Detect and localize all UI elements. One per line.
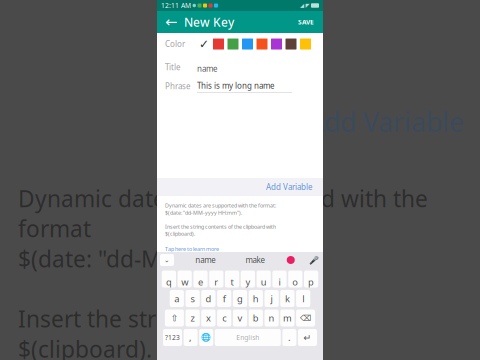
button[interactable]: 5 (225, 270, 239, 287)
button[interactable]: k (280, 290, 294, 307)
staticText: b (253, 312, 259, 324)
staticText: Insert the string co (18, 304, 221, 334)
staticText: r (214, 276, 218, 288)
button[interactable]: 4 (209, 270, 223, 287)
button[interactable]: Color swatch (213, 38, 224, 49)
staticText: Dynamic dates are supported with the for… (18, 183, 428, 244)
button[interactable]: ?123 (163, 329, 182, 346)
button[interactable]: Shift (165, 309, 184, 326)
button[interactable]: Color swatch (256, 38, 267, 49)
button[interactable]: h (249, 290, 263, 307)
button[interactable]: f (217, 290, 231, 307)
staticText: Dynamic dates are supported with the for… (165, 202, 276, 209)
staticText: w (181, 276, 188, 288)
staticText: 🎤 (309, 255, 319, 264)
button[interactable]: Add Variable (262, 179, 317, 195)
button[interactable]: 1 (162, 270, 176, 287)
staticText: o (292, 276, 298, 288)
button[interactable]: 7 (257, 270, 271, 287)
button[interactable]: 6 (241, 270, 255, 287)
staticText: ⇧ (170, 313, 178, 323)
button[interactable]: Period (282, 329, 296, 346)
staticText: d (205, 293, 211, 305)
button[interactable]: 2 (178, 270, 192, 287)
staticText: ✓ (199, 37, 209, 51)
staticText: s (191, 293, 195, 305)
staticText: m (283, 312, 292, 324)
button[interactable]: l (296, 290, 310, 307)
button[interactable]: Title (157, 55, 323, 74)
button[interactable]: Tap here to learn more (165, 245, 219, 252)
staticText: h (253, 293, 259, 305)
staticText: Title (165, 62, 181, 72)
button[interactable]: Enter (298, 329, 317, 346)
button[interactable]: z (185, 309, 200, 326)
button[interactable]: Expand suggestions (160, 254, 174, 266)
button[interactable]: c (217, 309, 231, 326)
button[interactable]: SAVE (293, 11, 319, 33)
button[interactable]: 8 (272, 270, 287, 287)
staticText: ?123 (165, 333, 180, 342)
button[interactable]: Voice input (308, 254, 320, 266)
staticText: f (223, 293, 226, 305)
button[interactable]: Backspace (296, 309, 315, 326)
button[interactable]: 0 (304, 270, 318, 287)
button[interactable]: No color (197, 37, 211, 51)
staticText: ◢ (300, 2, 304, 9)
button[interactable]: name (187, 255, 224, 265)
button[interactable]: Space (215, 329, 281, 346)
staticText: $(clipboard). (165, 230, 195, 237)
button[interactable]: x (201, 309, 215, 326)
staticText: v (237, 312, 242, 324)
button[interactable]: b (249, 309, 263, 326)
button[interactable]: Color swatch (227, 38, 238, 49)
staticText: c (222, 312, 226, 324)
button[interactable]: Emoji (287, 256, 295, 264)
button[interactable]: g (233, 290, 247, 307)
staticText: New Key (184, 14, 234, 30)
staticText: name (195, 255, 216, 265)
staticText: Add Variable (266, 182, 313, 192)
staticText: $(date: "dd-MM-yy (18, 244, 214, 274)
staticText: . (288, 331, 291, 344)
staticText: n (269, 312, 275, 324)
staticText: English (236, 333, 259, 342)
button[interactable]: Color swatch (300, 38, 311, 49)
button[interactable]: 9 (288, 270, 302, 287)
staticText: ⌄ (164, 256, 170, 264)
staticText: y (245, 276, 250, 288)
button[interactable]: Change language (199, 329, 213, 346)
staticText: 🌐 (201, 333, 211, 342)
button[interactable]: n (264, 309, 279, 326)
staticText: ◤ (305, 2, 309, 9)
staticText: Insert the string contents of the clipbo… (165, 223, 276, 230)
staticText: Color (165, 39, 185, 49)
button[interactable]: Color swatch (271, 38, 282, 49)
staticText: j (271, 293, 273, 305)
button[interactable]: m (280, 309, 294, 326)
staticText: t (231, 276, 234, 288)
button[interactable]: a (170, 290, 184, 307)
button[interactable]: make (237, 255, 273, 265)
button[interactable]: j (264, 290, 279, 307)
staticText: k (285, 293, 290, 305)
button[interactable]: Color swatch (242, 38, 253, 49)
staticText: SAVE (298, 18, 314, 26)
staticText: ⌫ (300, 313, 311, 323)
staticText: ↵ (303, 332, 311, 343)
staticText: i (278, 276, 280, 288)
button[interactable]: 3 (193, 270, 208, 287)
button[interactable]: Color swatch (285, 38, 296, 49)
button[interactable]: s (185, 290, 200, 307)
button[interactable]: Back (161, 11, 181, 33)
staticText: Add Variable (307, 104, 464, 139)
staticText: make (245, 255, 265, 265)
button[interactable]: Phrase (157, 74, 323, 93)
staticText: z (191, 312, 195, 324)
button[interactable]: Comma (184, 329, 198, 346)
staticText: , (189, 331, 192, 344)
button[interactable]: v (233, 309, 247, 326)
button[interactable]: d (201, 290, 215, 307)
staticText: q (166, 276, 172, 288)
staticText: $(clipboard). (18, 334, 152, 360)
